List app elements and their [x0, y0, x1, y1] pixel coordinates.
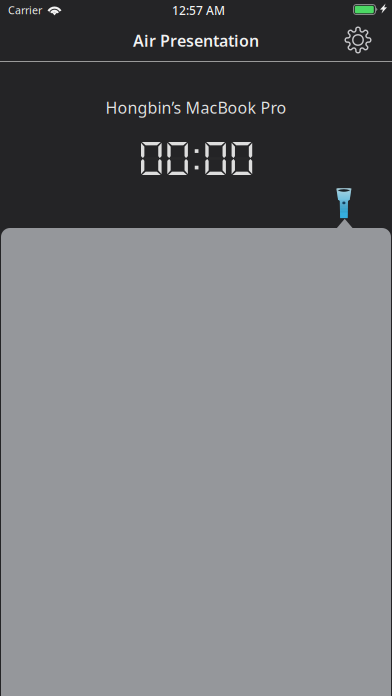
staticText: Carrier	[8, 3, 42, 17]
staticText: Air Presentation	[133, 30, 259, 51]
staticText: Hongbin’s MacBook Pro	[105, 97, 286, 118]
button[interactable]: Settings	[336, 20, 380, 59]
staticText: 12:57 AM	[172, 2, 225, 18]
